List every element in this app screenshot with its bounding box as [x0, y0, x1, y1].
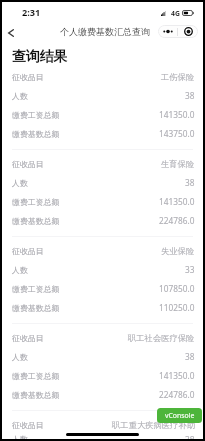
staticText: 缴费基数总额 [12, 216, 60, 226]
button[interactable]: vConsole [157, 408, 202, 423]
staticText: 缴费基数总额 [12, 129, 60, 139]
staticText: 缴费工资总额 [12, 371, 60, 381]
staticText: 224786.0 [159, 215, 195, 226]
staticText: 征收品目 [12, 333, 44, 343]
staticText: 141350.0 [159, 196, 195, 207]
button[interactable]: 缴费基数总额 [2, 298, 203, 317]
staticText: 110250.0 [159, 302, 195, 313]
staticText: 缴费工资总额 [12, 197, 60, 207]
staticText: 38 [185, 177, 195, 188]
staticText: 38 [185, 90, 195, 101]
button[interactable]: 人数 [2, 347, 203, 366]
staticText: 征收品目 [12, 72, 44, 82]
button[interactable]: Menu [158, 25, 198, 38]
staticText: 143750.0 [159, 128, 195, 139]
staticText: 生育保险 [161, 159, 195, 169]
staticText: 38 [185, 351, 195, 362]
staticText: 职工社会医疗保险 [128, 333, 195, 343]
button[interactable]: 缴费工资总额 [2, 279, 203, 298]
staticText: 2:31 [22, 6, 41, 19]
staticText: 查询结果 [12, 48, 68, 65]
button[interactable]: 征收品目 [2, 241, 203, 260]
staticText: 失业保险 [161, 246, 195, 256]
staticText: 缴费工资总额 [12, 284, 60, 294]
button[interactable]: 征收品目 [2, 415, 203, 434]
staticText: 人数 [12, 91, 28, 101]
staticText: 职工重大疾病医疗补助 [112, 420, 195, 430]
staticText: 33 [185, 264, 195, 275]
staticText: 征收品目 [12, 159, 44, 169]
staticText: vConsole [165, 411, 195, 420]
button[interactable]: 人数 [2, 173, 203, 192]
staticText: 人数 [12, 178, 28, 188]
staticText: 缴费基数总额 [12, 303, 60, 313]
staticText: 人数 [12, 434, 28, 439]
button[interactable]: 缴费基数总额 [2, 211, 203, 230]
button[interactable]: 征收品目 [2, 67, 203, 86]
button[interactable]: 缴费工资总额 [2, 192, 203, 211]
button[interactable]: 缴费工资总额 [2, 366, 203, 385]
staticText: 人数 [12, 265, 28, 275]
staticText: 38 [185, 434, 195, 439]
button[interactable]: 缴费工资总额 [2, 105, 203, 124]
button[interactable]: 人数 [2, 260, 203, 279]
button[interactable]: Back [0, 22, 22, 43]
staticText: 141350.0 [159, 370, 195, 381]
staticText: 征收品目 [12, 420, 44, 430]
staticText: 107850.0 [159, 283, 195, 294]
staticText: 缴费基数总额 [12, 390, 60, 400]
staticText: 224786.0 [159, 389, 195, 400]
button[interactable]: 缴费基数总额 [2, 385, 203, 404]
staticText: 141350.0 [159, 109, 195, 120]
staticText: 人数 [12, 352, 28, 362]
staticText: 工伤保险 [161, 72, 195, 82]
button[interactable]: 人数 [2, 86, 203, 105]
button[interactable]: 征收品目 [2, 328, 203, 347]
staticText: 个人缴费基数汇总查询 [60, 26, 150, 37]
staticText: 缴费工资总额 [12, 110, 60, 120]
staticText: 征收品目 [12, 246, 44, 256]
button[interactable]: 征收品目 [2, 154, 203, 173]
staticText: 4G [171, 9, 180, 17]
button[interactable]: 缴费基数总额 [2, 124, 203, 143]
button[interactable]: 人数 [2, 434, 203, 439]
